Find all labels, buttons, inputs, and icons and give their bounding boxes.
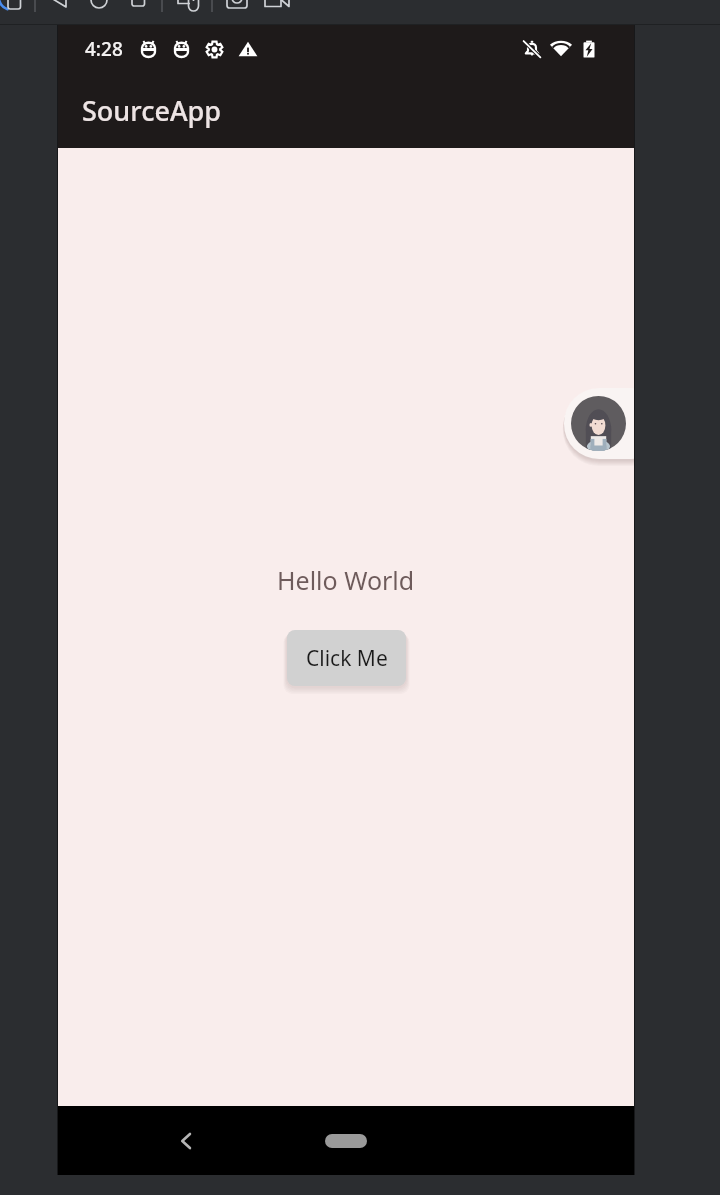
button[interactable]: Take screenshot — [220, 0, 256, 25]
button[interactable]: Home — [325, 1134, 367, 1148]
staticText: 4:28 — [85, 36, 123, 62]
button[interactable]: Back — [45, 0, 75, 25]
button[interactable]: Overview — [124, 0, 154, 25]
staticText: Click Me — [306, 644, 388, 673]
button[interactable]: Chat bubble — [564, 388, 634, 459]
button[interactable]: Power — [2, 0, 32, 25]
button[interactable]: Home — [85, 0, 115, 25]
button[interactable]: Device controls — [170, 0, 206, 25]
staticText: SourceApp — [82, 92, 222, 129]
button[interactable]: Record screen — [258, 0, 294, 25]
staticText: Hello World — [277, 563, 415, 597]
button[interactable]: Back — [164, 1119, 208, 1163]
button[interactable]: Click Me — [287, 630, 406, 686]
